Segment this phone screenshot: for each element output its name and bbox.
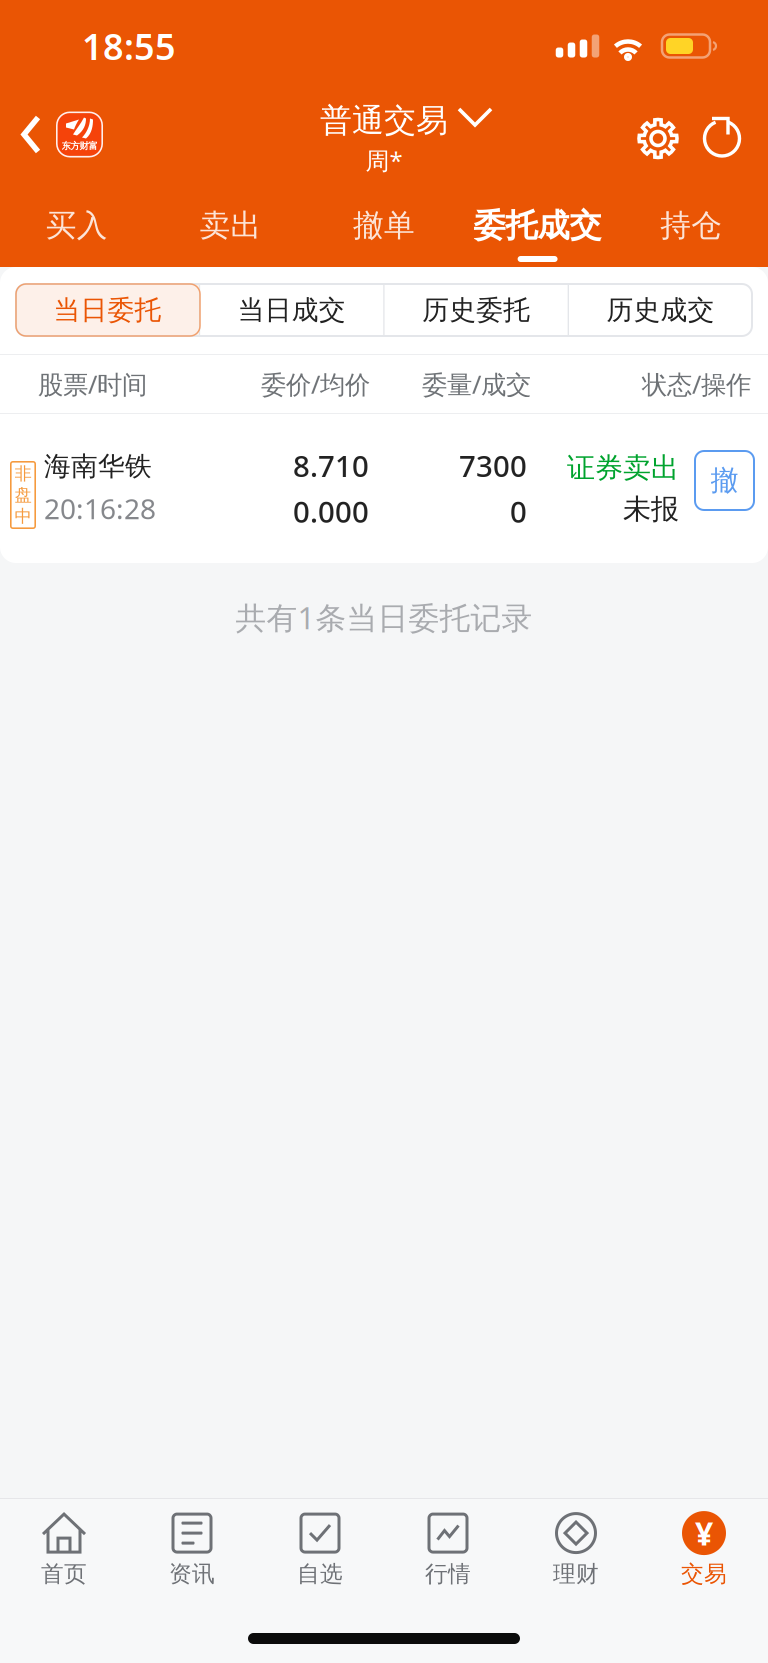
staticText: 股票/时间 [38,367,147,401]
button[interactable]: 当日成交 [200,284,383,336]
staticText: 20:16:28 [44,490,156,527]
staticText: 撤单 [353,207,415,244]
staticText: 理财 [553,1560,599,1588]
staticText: 当日成交 [238,294,346,326]
button[interactable]: 资讯 [128,1501,256,1599]
button[interactable]: 委托成交 [461,185,614,267]
staticText: 共有1条当日委托记录 [235,597,532,638]
button[interactable]: ¥ [640,1501,768,1599]
button[interactable]: 自选 [256,1501,384,1599]
button[interactable]: 普通交易 [0,92,768,185]
button[interactable]: 历史委托 [385,284,568,336]
staticText: 普通交易 [320,101,448,140]
staticText: 证券卖出 [567,451,679,485]
staticText: 卖出 [199,207,261,244]
staticText: 海南华铁 [44,450,152,483]
staticText: 周* [365,144,402,176]
staticText: 资讯 [169,1560,215,1588]
button[interactable]: 行情 [384,1501,512,1599]
button[interactable]: 卖出 [154,185,307,267]
button[interactable]: 历史成交 [569,284,752,336]
staticText: 撤 [710,463,738,498]
staticText: 委量/成交 [422,367,531,401]
staticText: 未报 [623,492,679,526]
staticText: 买入 [46,207,108,244]
button[interactable]: 首页 [0,1501,128,1599]
staticText: 首页 [41,1560,87,1588]
staticText: 中 [14,506,31,527]
button[interactable]: 持仓 [614,185,768,267]
button[interactable]: 理财 [512,1501,640,1599]
staticText: 盘 [14,484,31,506]
staticText: 委价/均价 [261,367,370,401]
staticText: 行情 [425,1560,471,1588]
staticText: 8.710 [293,446,369,485]
staticText: 持仓 [660,207,722,244]
staticText: 东方财富 [61,140,97,151]
staticText: 18:55 [82,22,176,70]
staticText: 0 [510,492,527,531]
staticText: 交易 [681,1560,727,1588]
button[interactable]: 当日委托 [16,284,199,336]
staticText: ¥ [695,1512,713,1554]
staticText: 自选 [297,1560,343,1588]
staticText: 7300 [459,446,527,485]
staticText: 委托成交 [474,206,602,245]
staticText: 状态/操作 [642,367,751,401]
button[interactable]: 撤 [695,451,754,510]
button[interactable]: Settings [636,116,680,160]
staticText: 历史委托 [422,294,530,326]
button[interactable]: 买入 [0,185,154,267]
staticText: 当日委托 [53,294,161,326]
button[interactable]: 撤单 [307,185,461,267]
staticText: 历史成交 [607,294,715,326]
button[interactable]: Back [0,92,115,185]
staticText: 0.000 [293,492,369,531]
staticText: 非 [14,463,31,484]
button[interactable]: Refresh [700,113,744,163]
